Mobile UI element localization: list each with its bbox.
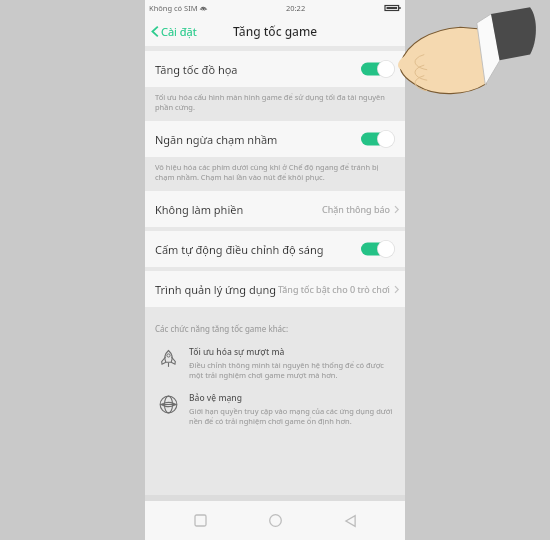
button[interactable]: Recent apps (180, 501, 220, 540)
button[interactable]: Cấm tự động điều chỉnh độ sáng (145, 231, 405, 267)
staticText: Cài đặt (161, 24, 197, 39)
button[interactable]: Network (145, 392, 405, 426)
button[interactable]: Home (255, 501, 295, 540)
staticText: Trình quản lý ứng dụng (155, 282, 277, 297)
other: Network (159, 395, 178, 414)
staticText: Vô hiệu hóa các phím dưới cùng khi ở Chế… (155, 162, 391, 182)
button[interactable]: Toggle (361, 240, 395, 258)
staticText: Không có SIM (149, 3, 198, 13)
staticText: Giới hạn quyền truy cập vào mạng của các… (189, 406, 393, 426)
button[interactable]: Toggle (361, 130, 395, 148)
staticText: 20:22 (286, 3, 306, 13)
button[interactable]: Ngăn ngừa chạm nhầm (145, 121, 405, 157)
staticText: Ngăn ngừa chạm nhầm (155, 132, 361, 147)
button[interactable]: Rocket (145, 346, 405, 380)
staticText: Tăng tốc bật cho 0 trò chơi (278, 283, 390, 295)
button[interactable]: Back (330, 501, 370, 540)
staticText: Bảo vệ mạng (189, 392, 242, 404)
staticText: Chặn thông báo (322, 203, 390, 215)
button[interactable]: Cài đặt (145, 20, 205, 43)
button[interactable]: Trình quản lý ứng dụng (145, 271, 405, 307)
button[interactable]: Không làm phiền (145, 191, 405, 227)
button[interactable]: Toggle (361, 60, 395, 78)
other: Rocket (159, 349, 178, 368)
staticText: Tăng tốc đồ họa (155, 62, 361, 77)
staticText: Điều chỉnh thông minh tài nguyên hệ thốn… (189, 360, 393, 380)
staticText: Tối ưu hóa sự mượt mà (189, 346, 285, 358)
staticText: Tối ưu hóa cấu hình màn hình game để sử … (155, 92, 391, 112)
staticText: Không làm phiền (155, 202, 244, 217)
staticText: Tăng tốc game (233, 23, 318, 39)
staticText: Cấm tự động điều chỉnh độ sáng (155, 242, 361, 257)
staticText: Các chức năng tăng tốc game khác: (155, 323, 289, 334)
button[interactable]: Tăng tốc đồ họa (145, 51, 405, 87)
